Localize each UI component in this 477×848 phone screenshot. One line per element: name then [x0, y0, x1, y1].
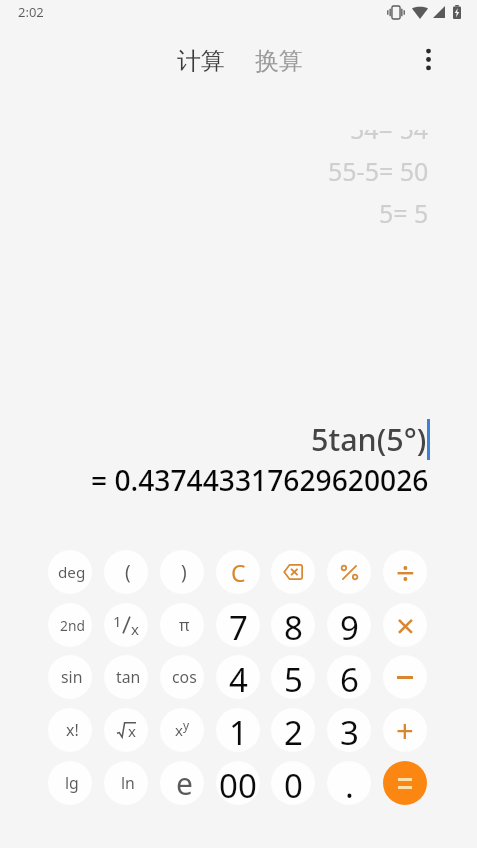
button[interactable]: 7: [216, 603, 260, 647]
button[interactable]: ×: [383, 603, 427, 647]
button[interactable]: More options: [405, 36, 452, 83]
button[interactable]: sin: [48, 655, 92, 699]
staticText: 55-5= 50: [328, 154, 429, 188]
button[interactable]: .: [327, 761, 371, 805]
button[interactable]: 2: [271, 708, 315, 752]
staticText: 5tan(5°): [311, 418, 427, 460]
button[interactable]: 3: [327, 708, 371, 752]
staticText: 5= 5: [379, 196, 429, 230]
staticText: C: [231, 557, 246, 588]
button[interactable]: tan: [104, 655, 148, 699]
staticText: 54= 54: [350, 130, 429, 146]
button[interactable]: 换算: [247, 40, 311, 82]
button[interactable]: x!: [48, 708, 92, 752]
staticText: x: [131, 619, 139, 639]
button[interactable]: Square root: [104, 708, 148, 752]
staticText: 换算: [255, 46, 303, 76]
button[interactable]: C: [216, 550, 260, 594]
staticText: 7: [229, 605, 248, 647]
staticText: 4: [229, 657, 248, 699]
button[interactable]: ÷: [383, 550, 427, 594]
staticText: π: [179, 614, 190, 636]
staticText: 6: [340, 657, 359, 699]
button[interactable]: cos: [160, 655, 204, 699]
button[interactable]: 00: [216, 761, 260, 805]
staticText: 3: [340, 710, 359, 752]
staticText: tan: [116, 666, 141, 688]
staticText: y: [183, 717, 190, 733]
staticText: ÷: [396, 550, 415, 594]
button[interactable]: (: [104, 550, 148, 594]
staticText: x: [128, 721, 136, 737]
button[interactable]: 计算: [169, 40, 233, 82]
staticText: .: [345, 763, 354, 805]
button[interactable]: 9: [327, 603, 371, 647]
button[interactable]: Reciprocal: [104, 603, 148, 647]
staticText: deg: [58, 562, 86, 583]
button[interactable]: 4: [216, 655, 260, 699]
button[interactable]: ): [160, 550, 204, 594]
button[interactable]: 2nd: [48, 603, 92, 647]
staticText: 1: [113, 611, 122, 631]
staticText: 1: [229, 710, 248, 752]
button[interactable]: deg: [48, 550, 92, 594]
staticText: sin: [61, 666, 83, 688]
button[interactable]: 5: [271, 655, 315, 699]
button[interactable]: 1: [216, 708, 260, 752]
button[interactable]: +: [383, 708, 427, 752]
button[interactable]: Power: [160, 708, 204, 752]
staticText: x!: [66, 719, 79, 741]
staticText: 2: [284, 710, 303, 752]
button[interactable]: Subtract: [383, 655, 427, 699]
staticText: 2:02: [18, 3, 44, 21]
button[interactable]: Backspace: [271, 550, 315, 594]
staticText: ln: [121, 772, 135, 794]
staticText: = 0.437443317629620026: [91, 461, 429, 499]
staticText: e: [176, 763, 193, 804]
button[interactable]: ln: [104, 761, 148, 805]
staticText: ×: [396, 603, 415, 647]
button[interactable]: Percent: [327, 550, 371, 594]
button[interactable]: 8: [271, 603, 315, 647]
staticText: 8: [284, 605, 303, 647]
staticText: 00: [219, 763, 257, 805]
button[interactable]: e: [160, 761, 204, 805]
button[interactable]: lg: [48, 761, 92, 805]
staticText: 5: [284, 657, 303, 699]
staticText: 计算: [177, 46, 225, 76]
staticText: 9: [340, 605, 359, 647]
staticText: lg: [65, 772, 79, 794]
staticText: +: [396, 709, 414, 751]
button[interactable]: Equals: [383, 761, 427, 805]
button[interactable]: 6: [327, 655, 371, 699]
staticText: x: [175, 720, 183, 740]
staticText: 2nd: [60, 616, 85, 635]
button[interactable]: π: [160, 603, 204, 647]
button[interactable]: 0: [271, 761, 315, 805]
staticText: ): [181, 559, 187, 585]
staticText: 0: [284, 763, 303, 805]
staticText: cos: [172, 666, 197, 688]
staticText: (: [125, 559, 131, 585]
